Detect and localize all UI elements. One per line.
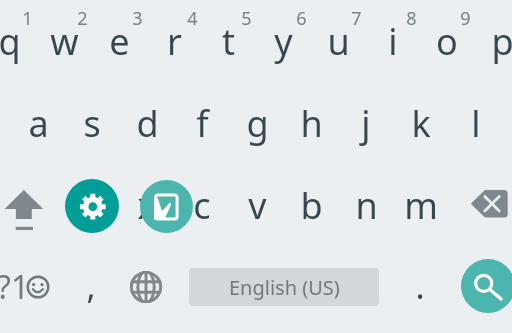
button[interactable]: . (360, 256, 480, 316)
staticText: k (411, 99, 431, 148)
button[interactable]: f (142, 93, 262, 153)
button[interactable]: z (32, 175, 152, 235)
button[interactable]: 9 (405, 0, 512, 48)
button[interactable]: Backspace (464, 184, 512, 228)
button[interactable]: u (278, 11, 398, 71)
staticText: 4 (187, 6, 198, 31)
staticText: f (196, 99, 209, 148)
button[interactable]: Switch theme (140, 180, 193, 233)
button[interactable]: o (387, 11, 507, 71)
staticText: b (300, 181, 323, 230)
staticText: 6 (296, 6, 307, 31)
staticText: . (415, 263, 425, 309)
button[interactable]: g (197, 93, 317, 153)
button[interactable]: j (306, 93, 426, 153)
button[interactable]: 8 (351, 0, 471, 48)
button[interactable]: Shift (0, 180, 48, 236)
staticText: 9 (460, 6, 471, 31)
button[interactable]: ?123 (0, 257, 26, 317)
button[interactable]: English (US) (189, 268, 379, 306)
button[interactable]: 5 (186, 0, 306, 48)
staticText: d (136, 99, 159, 148)
staticText: q (0, 17, 21, 66)
staticText: 7 (351, 6, 362, 31)
staticText: w (50, 17, 79, 66)
staticText: English (US) (229, 274, 340, 301)
button[interactable]: p (442, 11, 512, 71)
staticText: a (28, 99, 49, 148)
button[interactable]: 7 (296, 0, 416, 48)
button[interactable]: y (223, 11, 343, 71)
staticText: m (404, 181, 438, 230)
staticText: ?123 (0, 265, 26, 309)
staticText: e (109, 17, 130, 66)
button[interactable]: w (4, 11, 124, 71)
staticText: , (86, 263, 96, 309)
button[interactable]: r (114, 11, 234, 71)
button[interactable]: , (31, 256, 151, 316)
button[interactable]: Search (461, 259, 512, 313)
button[interactable]: b (251, 175, 371, 235)
button[interactable]: Emoji (11, 260, 65, 314)
staticText: n (355, 181, 378, 230)
button[interactable]: v (197, 175, 317, 235)
staticText: c (193, 181, 211, 230)
staticText: 3 (132, 6, 143, 31)
staticText: s (83, 99, 101, 148)
button[interactable]: i (333, 11, 453, 71)
staticText: x (137, 181, 157, 230)
button[interactable]: 2 (22, 0, 142, 48)
button[interactable]: a (0, 93, 98, 153)
button[interactable]: 4 (132, 0, 252, 48)
button[interactable]: 6 (241, 0, 361, 48)
staticText: r (167, 17, 182, 66)
button[interactable]: q (0, 11, 69, 71)
button[interactable]: m (361, 175, 481, 235)
staticText: o (436, 17, 458, 66)
staticText: u (327, 17, 350, 66)
button[interactable]: s (32, 93, 152, 153)
button[interactable]: h (251, 93, 371, 153)
button[interactable]: 1 (0, 0, 87, 48)
staticText: v (248, 181, 267, 230)
staticText: l (471, 99, 481, 148)
button[interactable]: n (306, 175, 426, 235)
staticText: h (300, 99, 323, 148)
button[interactable]: t (168, 11, 288, 71)
staticText: 1 (22, 6, 33, 31)
staticText: z (84, 181, 101, 230)
button[interactable]: 3 (77, 0, 197, 48)
staticText: 2 (77, 6, 88, 31)
staticText: g (246, 99, 269, 148)
button[interactable]: e (59, 11, 179, 71)
button[interactable]: l (416, 93, 512, 153)
button[interactable]: x (87, 175, 207, 235)
staticText: y (274, 17, 293, 66)
staticText: j (361, 99, 371, 148)
staticText: p (491, 17, 512, 66)
button[interactable]: c (142, 175, 262, 235)
staticText: i (388, 17, 398, 66)
button[interactable]: 0 (460, 0, 512, 48)
button[interactable]: Settings (65, 179, 119, 233)
button[interactable]: k (361, 93, 481, 153)
button[interactable]: d (87, 93, 207, 153)
staticText: 5 (241, 6, 252, 31)
staticText: t (222, 17, 235, 66)
staticText: 8 (406, 6, 417, 31)
button[interactable]: Change language (119, 260, 173, 314)
